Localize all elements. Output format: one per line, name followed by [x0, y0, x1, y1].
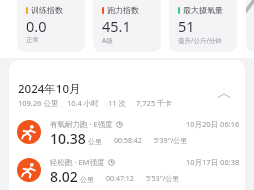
staticText: 最大摄氧量: [183, 5, 223, 15]
staticText: 公里: [88, 137, 102, 146]
button[interactable]: 2024年10月: [9, 60, 245, 113]
staticText: 10.38: [50, 129, 86, 148]
staticText: 8.02: [50, 167, 78, 186]
staticText: 5'39''/公里: [154, 136, 188, 146]
staticText: A级: [102, 36, 113, 45]
button[interactable]: Collapse: [215, 87, 233, 105]
staticText: 10.4 小时: [67, 98, 99, 108]
staticText: 公里: [80, 175, 94, 184]
button[interactable]: 有氧耐力跑 · E强度: [9, 113, 245, 151]
button[interactable]: 最大摄氧量: [169, 0, 237, 52]
staticText: 10月20日 06:16: [186, 119, 240, 129]
staticText: 11 次: [108, 98, 127, 108]
staticText: 51: [178, 16, 195, 36]
button[interactable]: 轻松跑 · EM强度: [9, 151, 245, 189]
staticText: 跑力指数: [107, 5, 139, 15]
staticText: 2024年10月: [18, 81, 81, 97]
staticText: 109.26 公里: [18, 98, 59, 108]
button[interactable]: 训练指数: [17, 0, 85, 52]
staticText: 45.1: [102, 16, 131, 36]
staticText: 5'53''/公里: [146, 174, 180, 184]
staticText: 7,725 千卡: [136, 98, 173, 108]
staticText: 训练指数: [31, 5, 63, 15]
staticText: 正常: [26, 36, 39, 44]
staticText: 轻松跑 · EM强度: [50, 157, 105, 167]
staticText: 毫升/公斤/分钟: [178, 36, 222, 45]
staticText: 有氧耐力跑 · E强度: [50, 119, 113, 129]
staticText: 00:47:12: [106, 174, 134, 184]
staticText: 10月17日 06:38: [186, 157, 240, 167]
staticText: 0.0: [26, 16, 47, 36]
button[interactable]: 跑力指数: [93, 0, 161, 52]
staticText: 00:58:42: [114, 136, 142, 146]
